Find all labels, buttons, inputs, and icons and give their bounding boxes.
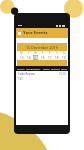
- button[interactable]: 16: [39, 55, 46, 60]
- staticText: 19: [62, 56, 66, 60]
- staticText: W: [34, 51, 37, 55]
- staticText: 13: [20, 56, 24, 60]
- staticText: 15 December 2019: [26, 45, 58, 50]
- staticText: Code Review: [18, 72, 35, 76]
- button[interactable]: 14: [25, 55, 32, 60]
- button[interactable]: 19: [60, 55, 67, 60]
- staticText: 18: [55, 56, 59, 60]
- button[interactable]: 17: [46, 55, 53, 60]
- staticText: WEEK: [43, 67, 50, 70]
- button[interactable]: WEEK: [43, 67, 50, 70]
- button[interactable]: 18: [53, 55, 60, 60]
- button[interactable]: MONTH: [51, 67, 60, 70]
- staticText: Your Events: [23, 30, 48, 36]
- staticText: S: [56, 51, 58, 55]
- button[interactable]: 13: [17, 55, 25, 60]
- staticText: TOMORROW: [26, 67, 41, 70]
- button[interactable]: TOMORROW: [26, 67, 41, 70]
- staticText: YEAR: [61, 67, 67, 70]
- staticText: 17: [48, 56, 52, 60]
- staticText: S: [63, 51, 65, 55]
- staticText: MONTH: [51, 67, 60, 70]
- button[interactable]: Menu: [16, 28, 68, 38]
- button[interactable]: 15: [32, 55, 39, 60]
- staticText: 14: [27, 56, 31, 60]
- staticText: Call: [18, 77, 23, 81]
- staticText: M: [20, 51, 23, 55]
- button[interactable]: 15 December 2019: [17, 43, 67, 51]
- staticText: TODAY: [17, 67, 25, 70]
- button[interactable]: TODAY: [17, 67, 25, 70]
- staticText: 10:00: [59, 72, 66, 76]
- staticText: T: [42, 51, 44, 55]
- button[interactable]: YEAR: [61, 67, 67, 70]
- staticText: 16: [41, 56, 45, 60]
- staticText: F: [49, 51, 51, 55]
- staticText: 15: [34, 56, 38, 60]
- staticText: T: [28, 51, 30, 55]
